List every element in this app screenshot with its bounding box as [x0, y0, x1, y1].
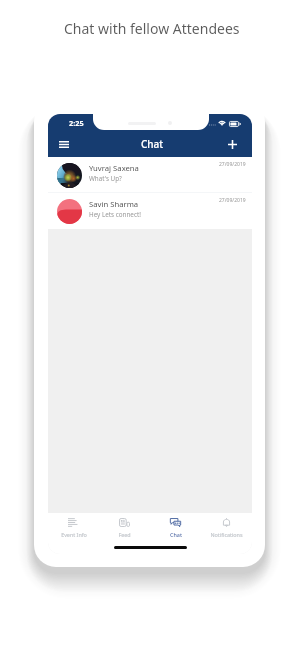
button[interactable]: Yuvraj Saxena: [48, 157, 252, 193]
button[interactable]: Menu: [54, 134, 74, 154]
staticText: Chat with fellow Attendees: [64, 19, 240, 38]
button[interactable]: Savin Sharma: [48, 193, 252, 229]
staticText: 27/09/2019: [219, 161, 246, 168]
button[interactable]: Feed: [99, 518, 150, 538]
staticText: Feed: [118, 531, 131, 538]
staticText: What's Up?: [89, 174, 122, 183]
staticText: Event Info: [61, 531, 87, 538]
button[interactable]: Add: [222, 134, 242, 154]
staticText: 2:25: [69, 118, 84, 128]
staticText: Notifications: [210, 531, 243, 538]
staticText: Chat: [170, 531, 182, 538]
staticText: 27/09/2019: [219, 197, 246, 204]
button[interactable]: Notifications: [201, 518, 252, 538]
staticText: Savin Sharma: [89, 199, 139, 209]
staticText: Chat: [141, 137, 164, 151]
button[interactable]: Chat: [150, 518, 201, 538]
staticText: Hey Lets connect!: [89, 210, 141, 219]
button[interactable]: Event Info: [48, 518, 99, 538]
staticText: Yuvraj Saxena: [89, 163, 139, 173]
